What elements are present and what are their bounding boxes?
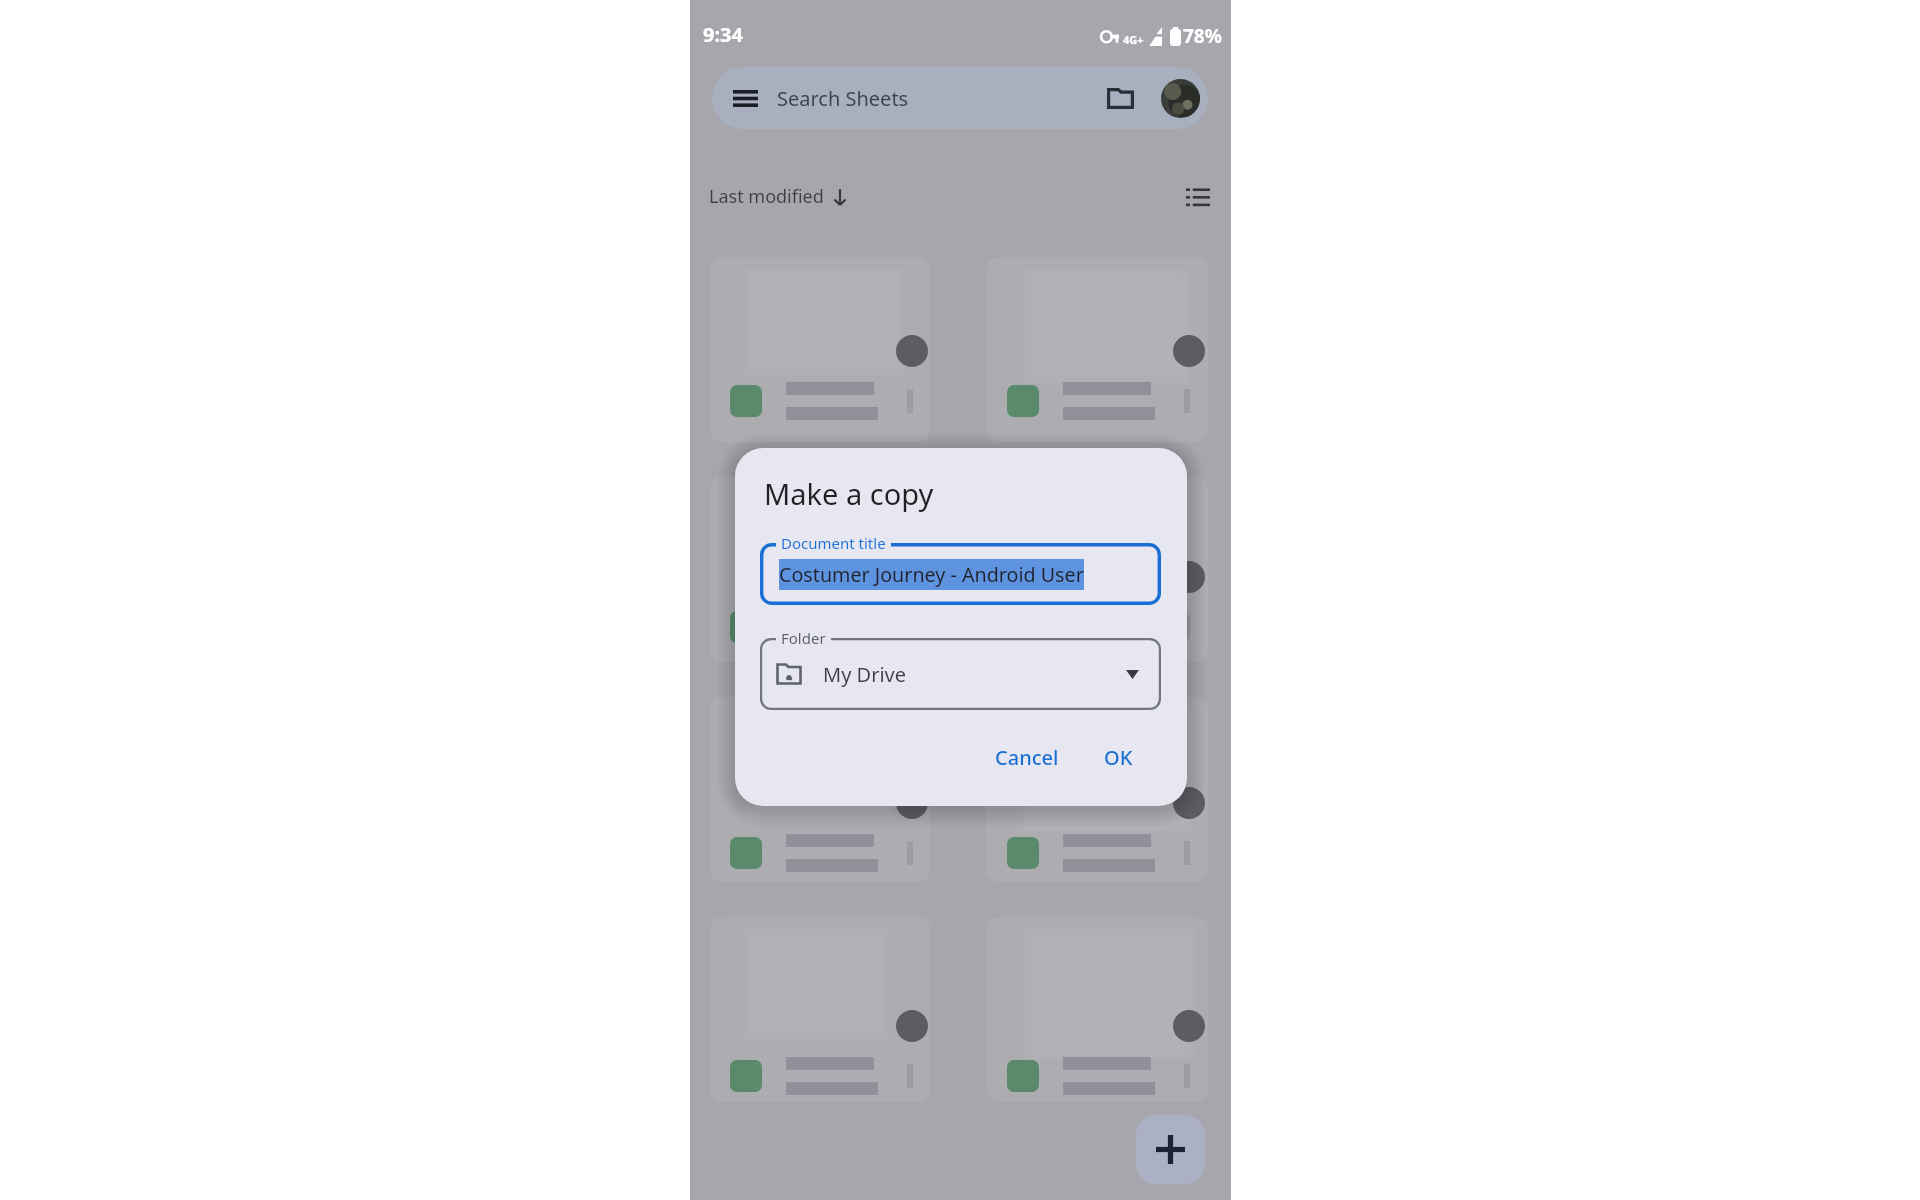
button[interactable] (987, 477, 1208, 662)
button[interactable]: Browse folders (1107, 88, 1134, 109)
button[interactable]: Open navigation menu (733, 90, 758, 107)
staticText: Document title (781, 533, 886, 553)
button[interactable]: OK (1092, 736, 1145, 779)
button[interactable] (710, 917, 930, 1102)
staticText: 9:34 (703, 21, 743, 48)
button[interactable]: Switch to list view (1186, 187, 1210, 205)
button[interactable] (710, 477, 930, 662)
button[interactable]: Create new spreadsheet (1136, 1115, 1205, 1184)
staticText: Last modified (709, 184, 824, 209)
staticText: My Drive (823, 661, 906, 688)
button[interactable]: My Drive (760, 638, 1161, 710)
button[interactable]: Account (1161, 79, 1200, 118)
button[interactable] (987, 697, 1208, 882)
staticText: 78% (1183, 23, 1222, 49)
button[interactable]: Cancel (983, 736, 1071, 779)
button[interactable] (710, 697, 930, 882)
button[interactable] (987, 917, 1208, 1102)
staticText: Search Sheets (777, 85, 909, 112)
staticText: Make a copy (764, 474, 934, 513)
button[interactable] (987, 257, 1208, 442)
button[interactable] (710, 257, 930, 442)
button[interactable]: Open navigation menu (712, 67, 1208, 129)
staticText: 4G+ (1123, 32, 1144, 47)
staticText: Cancel (995, 744, 1059, 771)
staticText: OK (1104, 744, 1133, 771)
staticText: Costumer Journey - Android User (779, 561, 1084, 588)
button[interactable]: Last modified (709, 184, 849, 209)
staticText: Folder (781, 628, 826, 648)
button[interactable]: Costumer Journey - Android User (760, 543, 1161, 605)
